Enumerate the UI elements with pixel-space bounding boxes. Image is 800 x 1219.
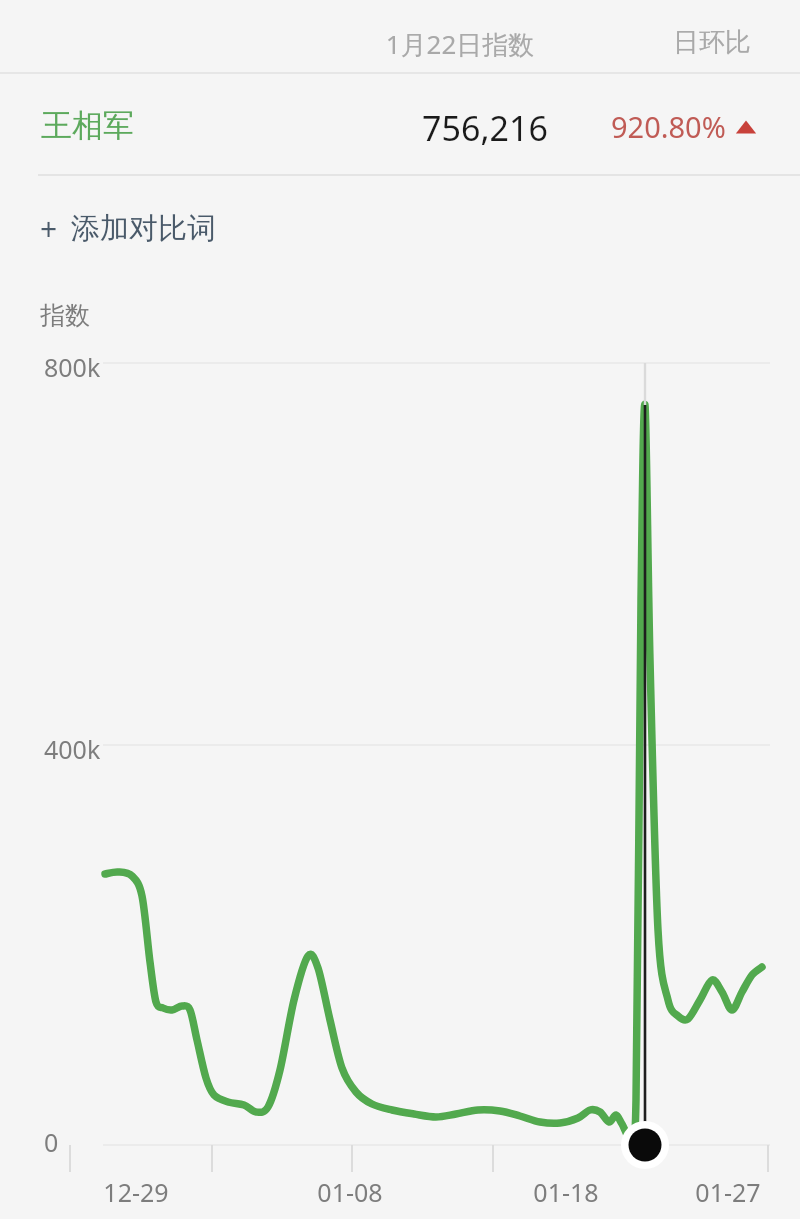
staticText: 756,216 bbox=[390, 105, 580, 151]
staticText: 12-29 bbox=[86, 1175, 186, 1209]
staticText: 01-27 bbox=[678, 1175, 778, 1209]
staticText: 0 bbox=[44, 1125, 59, 1159]
button[interactable]: 王相军 bbox=[0, 73, 800, 174]
staticText: 1月22日指数 bbox=[372, 26, 548, 62]
staticText: 920.80% bbox=[611, 107, 726, 146]
staticText: 日环比 bbox=[654, 26, 770, 59]
staticText: + bbox=[40, 208, 58, 249]
staticText: 01-18 bbox=[516, 1175, 616, 1209]
staticText: 添加对比词 bbox=[71, 210, 216, 247]
staticText: 指数 bbox=[40, 300, 90, 331]
staticText: 400k bbox=[44, 732, 101, 766]
button[interactable]: + bbox=[38, 203, 218, 253]
staticText: 王相军 bbox=[41, 106, 134, 145]
staticText: 800k bbox=[44, 350, 101, 384]
staticText: 01-08 bbox=[300, 1175, 400, 1209]
